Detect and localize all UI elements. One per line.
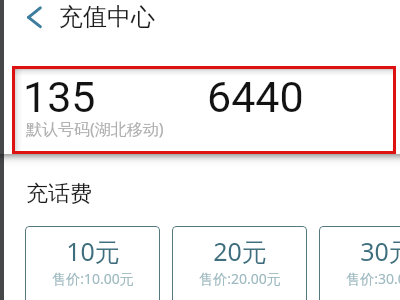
staticText: 20元: [213, 234, 267, 268]
button[interactable]: 30元: [319, 226, 400, 300]
staticText: 充话费: [26, 180, 92, 208]
staticText: 10元: [66, 234, 120, 268]
staticText: 售价:20.00元: [199, 269, 281, 288]
staticText: 135: [23, 72, 96, 122]
staticText: 6440: [207, 72, 304, 122]
staticText: 30元: [360, 234, 400, 268]
button[interactable]: Back: [16, 1, 50, 35]
button[interactable]: 20元: [172, 226, 307, 300]
staticText: 售价:30.00元: [346, 269, 400, 288]
staticText: 充值中心: [59, 2, 155, 32]
button[interactable]: 10元: [25, 226, 160, 300]
staticText: 默认号码(湖北移动): [26, 118, 164, 140]
staticText: 售价:10.00元: [52, 269, 134, 288]
button[interactable]: 135: [15, 69, 393, 151]
